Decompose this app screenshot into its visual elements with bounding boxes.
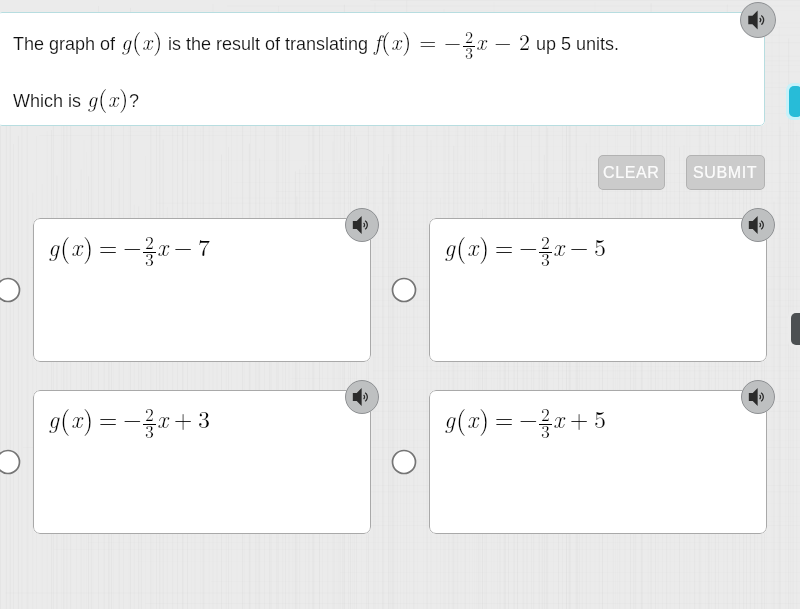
staticText: SUBMIT xyxy=(693,164,758,182)
staticText: ( xyxy=(132,23,142,57)
staticText: ? xyxy=(129,91,140,111)
staticText: − xyxy=(123,401,142,435)
staticText: x xyxy=(157,229,169,263)
staticText: x xyxy=(157,401,169,435)
staticText: − xyxy=(444,25,462,56)
staticText: ) xyxy=(153,23,163,57)
staticText: + xyxy=(169,401,198,435)
staticText: ) xyxy=(83,227,94,264)
staticText: x xyxy=(391,25,402,56)
button[interactable]: Play audio xyxy=(741,208,775,242)
staticText: 5 xyxy=(594,229,606,263)
staticText: x xyxy=(553,229,565,263)
button[interactable]: Menu xyxy=(788,310,800,348)
staticText: x xyxy=(142,25,153,56)
staticText: ) xyxy=(479,227,490,264)
staticText: CLEAR xyxy=(603,164,660,182)
staticText: ( xyxy=(98,80,108,114)
staticText: − xyxy=(487,25,519,56)
staticText: g xyxy=(444,229,456,263)
staticText: x xyxy=(467,229,479,263)
staticText: ) xyxy=(119,80,129,114)
staticText: x xyxy=(476,25,487,56)
button[interactable]: Play audio xyxy=(740,2,776,38)
staticText: 2 xyxy=(519,25,531,56)
staticText: − xyxy=(169,229,198,263)
staticText: 2 xyxy=(541,229,550,254)
staticText: 3 xyxy=(145,246,154,271)
staticText: − xyxy=(123,229,142,263)
button[interactable]: Play audio xyxy=(741,380,775,414)
staticText: + xyxy=(565,401,594,435)
staticText: x xyxy=(71,229,83,263)
staticText: 2 xyxy=(145,401,154,426)
button[interactable]: g xyxy=(33,390,371,534)
staticText: 3 xyxy=(198,401,210,435)
staticText: g xyxy=(444,401,456,435)
button[interactable]: Play audio xyxy=(345,380,379,414)
staticText: 3 xyxy=(541,418,550,443)
staticText: up 5 units. xyxy=(531,34,620,54)
staticText: 3 xyxy=(145,418,154,443)
staticText: ) xyxy=(83,399,94,436)
button[interactable]: g xyxy=(33,218,371,362)
staticText: x xyxy=(553,401,565,435)
staticText: ) xyxy=(479,399,490,436)
button[interactable]: Play audio xyxy=(345,208,379,242)
button[interactable]: g xyxy=(429,218,767,362)
staticText: The graph of xyxy=(13,34,121,54)
staticText: x xyxy=(467,401,479,435)
staticText: − xyxy=(565,229,594,263)
staticText: ( xyxy=(456,227,467,264)
staticText: = xyxy=(490,401,519,435)
staticText: ) xyxy=(402,23,412,57)
staticText: = xyxy=(94,229,123,263)
staticText: = xyxy=(412,25,444,56)
staticText: ( xyxy=(456,399,467,436)
staticText: 3 xyxy=(465,41,474,64)
staticText: x xyxy=(71,401,83,435)
staticText: 5 xyxy=(594,401,606,435)
staticText: ( xyxy=(381,23,391,57)
staticText: 2 xyxy=(145,229,154,254)
staticText: 7 xyxy=(198,229,210,263)
button[interactable]: SUBMIT xyxy=(686,155,765,190)
staticText: f xyxy=(374,25,381,56)
staticText: 2 xyxy=(465,25,474,48)
staticText: g xyxy=(48,401,60,435)
staticText: g xyxy=(87,82,98,113)
button[interactable]: Hint xyxy=(786,83,800,120)
staticText: = xyxy=(94,401,123,435)
staticText: g xyxy=(48,229,60,263)
staticText: − xyxy=(519,229,538,263)
staticText: Which is xyxy=(13,91,87,111)
staticText: ( xyxy=(60,227,71,264)
staticText: g xyxy=(121,25,132,56)
staticText: x xyxy=(108,82,119,113)
staticText: 2 xyxy=(541,401,550,426)
staticText: ( xyxy=(60,399,71,436)
staticText: − xyxy=(519,401,538,435)
staticText: is the result of translating xyxy=(163,34,374,54)
staticText: 3 xyxy=(541,246,550,271)
button[interactable]: CLEAR xyxy=(598,155,665,190)
staticText: = xyxy=(490,229,519,263)
button[interactable]: g xyxy=(429,390,767,534)
